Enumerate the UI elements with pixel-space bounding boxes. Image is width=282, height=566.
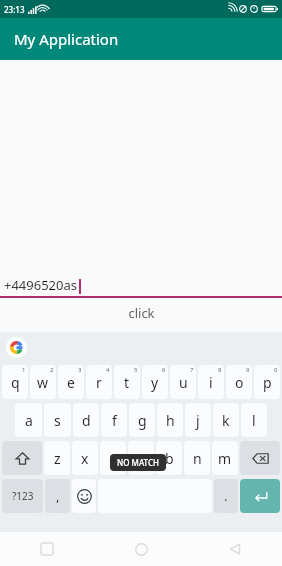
button[interactable]: p: [254, 365, 280, 399]
staticText: k: [222, 411, 230, 430]
staticText: 4: [106, 366, 110, 374]
button[interactable]: i: [198, 365, 224, 399]
staticText: l: [252, 411, 256, 430]
button[interactable]: c: [100, 441, 126, 475]
staticText: a: [25, 411, 33, 430]
button[interactable]: click: [0, 298, 282, 328]
button[interactable]: l: [241, 403, 267, 437]
staticText: 3: [78, 366, 82, 374]
button[interactable]: Recents: [0, 532, 94, 566]
staticText: ?123: [12, 489, 34, 503]
staticText: ,: [56, 487, 60, 505]
button[interactable]: j: [185, 403, 211, 437]
button[interactable]: m: [212, 441, 238, 475]
staticText: j: [196, 411, 200, 430]
button[interactable]: a: [15, 403, 42, 437]
staticText: g: [138, 411, 147, 430]
staticText: +4496520as: [4, 276, 78, 294]
button[interactable]: v: [128, 441, 154, 475]
staticText: click: [128, 304, 155, 322]
button[interactable]: f: [101, 403, 127, 437]
staticText: 6: [162, 366, 166, 374]
staticText: 9: [246, 366, 250, 374]
staticText: o: [235, 373, 244, 392]
button[interactable]: Back: [188, 532, 282, 566]
staticText: m: [218, 449, 232, 468]
button[interactable]: t: [114, 365, 140, 399]
button[interactable]: w: [30, 365, 56, 399]
staticText: q: [11, 373, 20, 392]
button[interactable]: k: [213, 403, 239, 437]
staticText: h: [166, 411, 175, 430]
staticText: d: [82, 411, 91, 430]
button[interactable]: Emoji: [72, 479, 96, 513]
button[interactable]: Comma: [45, 479, 70, 513]
button[interactable]: u: [170, 365, 196, 399]
button[interactable]: s: [44, 403, 71, 437]
staticText: s: [54, 411, 61, 430]
button[interactable]: r: [86, 365, 112, 399]
staticText: x: [81, 449, 89, 468]
button[interactable]: n: [184, 441, 210, 475]
button[interactable]: Symbols: [2, 479, 43, 513]
button[interactable]: q: [2, 365, 28, 399]
staticText: n: [193, 449, 202, 468]
staticText: z: [54, 449, 61, 468]
staticText: My Application: [14, 29, 119, 49]
button[interactable]: d: [73, 403, 99, 437]
staticText: e: [67, 373, 75, 392]
staticText: u: [179, 373, 188, 392]
button[interactable]: Home: [94, 532, 188, 566]
button[interactable]: g: [129, 403, 155, 437]
staticText: p: [263, 373, 272, 392]
staticText: 5: [134, 366, 138, 374]
staticText: 0: [274, 366, 278, 374]
button[interactable]: x: [72, 441, 98, 475]
staticText: f: [112, 411, 117, 430]
button[interactable]: Google: [6, 337, 27, 358]
button[interactable]: e: [58, 365, 84, 399]
staticText: 7: [190, 366, 194, 374]
staticText: NO MATCH: [117, 457, 159, 468]
staticText: .: [224, 487, 228, 505]
staticText: y: [151, 373, 159, 392]
staticText: r: [96, 373, 102, 392]
staticText: v: [137, 449, 145, 468]
button[interactable]: y: [142, 365, 168, 399]
button[interactable]: Enter: [240, 479, 280, 513]
staticText: w: [37, 373, 49, 392]
staticText: 8: [218, 366, 222, 374]
staticText: 2: [50, 366, 54, 374]
button[interactable]: +4496520as: [0, 276, 282, 298]
button[interactable]: Backspace: [240, 441, 280, 475]
staticText: 1: [22, 366, 26, 374]
button[interactable]: b: [156, 441, 182, 475]
button[interactable]: My Application: [0, 18, 282, 60]
staticText: b: [165, 449, 174, 468]
staticText: t: [124, 373, 130, 392]
button[interactable]: Period: [214, 479, 238, 513]
button[interactable]: Shift: [2, 441, 42, 475]
button[interactable]: o: [226, 365, 252, 399]
staticText: c: [110, 449, 117, 468]
staticText: i: [209, 373, 213, 392]
button[interactable]: h: [157, 403, 183, 437]
staticText: 23:13: [4, 4, 25, 15]
button[interactable]: z: [44, 441, 70, 475]
